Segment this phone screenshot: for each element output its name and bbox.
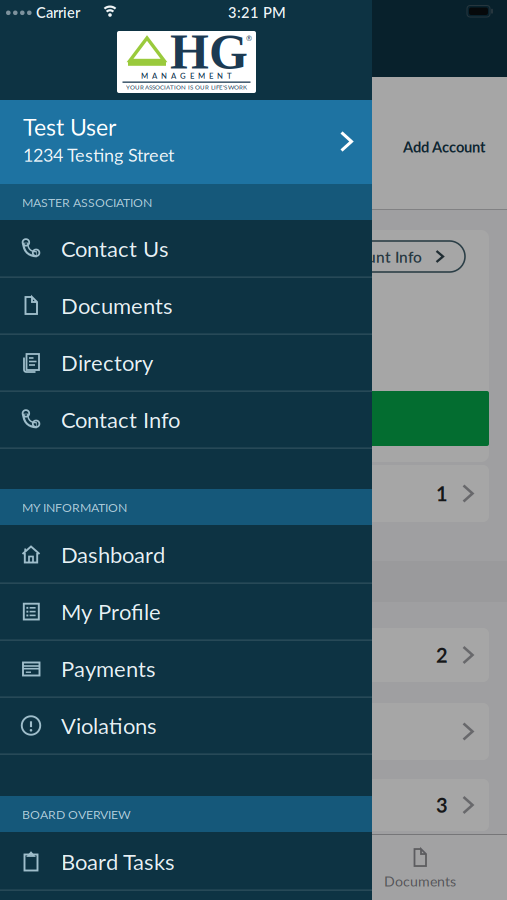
button[interactable]: Documents — [0, 277, 372, 334]
staticText: M A N A G E M E N T — [141, 71, 232, 80]
staticText: Violations — [61, 712, 157, 739]
staticText: Contact Us — [61, 235, 169, 262]
staticText: MY INFORMATION — [22, 500, 127, 515]
button[interactable]: View 1 items — [18, 465, 489, 522]
button[interactable]: Contact Us — [0, 220, 372, 277]
staticText: ® — [246, 34, 252, 43]
button[interactable]: Directory — [0, 334, 372, 391]
button[interactable]: View 3 items — [18, 779, 489, 831]
button[interactable]: Board Tasks — [0, 833, 372, 890]
staticText: Payments — [61, 655, 156, 682]
button[interactable]: My Profile — [0, 583, 372, 640]
staticText: 2 — [436, 643, 448, 667]
button[interactable]: Documents — [365, 838, 475, 898]
staticText: Test User — [23, 113, 116, 141]
staticText: Contact Info — [61, 406, 180, 433]
button[interactable]: Make a Payment — [18, 391, 489, 446]
button[interactable]: Payments — [0, 640, 372, 697]
staticText: My Profile — [61, 598, 161, 625]
staticText: YOUR ASSOCIATION IS OUR LIFE'S WORK — [126, 83, 247, 91]
staticText: Board Tasks — [61, 848, 175, 875]
staticText: Carrier — [36, 3, 80, 21]
button[interactable]: Contact Info — [0, 391, 372, 448]
staticText: MASTER ASSOCIATION — [22, 195, 152, 210]
staticText: 3 — [436, 793, 448, 817]
staticText: Account Info — [334, 247, 422, 266]
staticText: Documents — [384, 872, 456, 889]
staticText: 1234 Testing Street — [23, 144, 174, 166]
button[interactable]: Violations — [0, 697, 372, 754]
button[interactable]: Add Account — [403, 138, 485, 156]
staticText: HG — [170, 24, 248, 79]
staticText: Documents — [61, 292, 173, 319]
staticText: Dashboard — [61, 541, 165, 568]
staticText: BOARD OVERVIEW — [22, 807, 131, 822]
staticText: Add Account — [403, 138, 485, 156]
button[interactable]: Account Info — [329, 241, 465, 272]
button[interactable]: View details — [18, 703, 489, 760]
button[interactable]: View 2 items — [18, 628, 489, 682]
button[interactable]: Dashboard — [0, 526, 372, 583]
staticText: 3:21 PM — [228, 3, 286, 21]
staticText: 1 — [436, 481, 448, 505]
staticText: Directory — [61, 349, 153, 376]
button[interactable]: Test User — [0, 100, 372, 184]
